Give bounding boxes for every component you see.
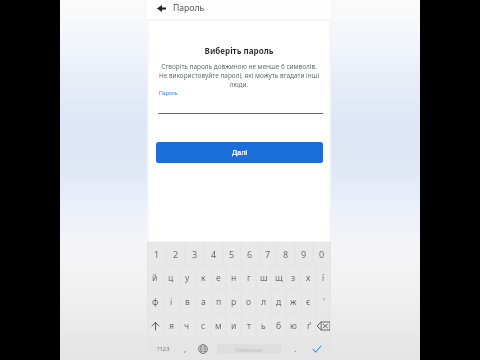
button[interactable]: г xyxy=(242,267,255,289)
staticText: . xyxy=(294,343,297,355)
button[interactable]: Done xyxy=(310,338,324,360)
staticText: Виберіть пароль xyxy=(147,45,331,56)
staticText: ю xyxy=(290,320,297,332)
button[interactable]: л xyxy=(257,291,270,313)
staticText: і xyxy=(170,296,173,308)
staticText: м xyxy=(215,320,222,332)
button[interactable]: . xyxy=(288,338,302,360)
staticText: 3 xyxy=(192,248,198,260)
button[interactable]: с xyxy=(196,315,210,337)
staticText: и xyxy=(231,320,237,332)
button[interactable]: ?123 xyxy=(152,338,174,360)
staticText: щ xyxy=(275,272,283,284)
button[interactable]: Backspace xyxy=(317,315,330,337)
staticText: 2 xyxy=(173,248,179,260)
button[interactable]: в xyxy=(180,291,194,313)
button[interactable]: 3 xyxy=(186,243,203,265)
staticText: Створіть пароль довжиною не менше 6 симв… xyxy=(158,62,320,89)
staticText: Далі xyxy=(232,148,248,158)
button[interactable]: п xyxy=(212,291,225,313)
button[interactable]: ч xyxy=(180,315,194,337)
button[interactable]: х xyxy=(302,267,315,289)
staticText: з xyxy=(291,272,296,284)
button[interactable]: 8 xyxy=(278,243,294,265)
button[interactable]: ї xyxy=(317,267,330,289)
button[interactable]: і xyxy=(164,291,178,313)
button[interactable]: 6 xyxy=(242,243,258,265)
staticText: є xyxy=(306,296,311,308)
button[interactable]: я xyxy=(164,315,178,337)
staticText: ' xyxy=(323,296,325,308)
staticText: 0 xyxy=(319,248,325,260)
button[interactable]: ж xyxy=(287,291,300,313)
staticText: ї xyxy=(322,272,325,284)
staticText: д xyxy=(276,296,282,308)
staticText: н xyxy=(231,272,237,284)
button[interactable]: Shift xyxy=(148,315,162,337)
button[interactable]: м xyxy=(212,315,225,337)
button[interactable]: б xyxy=(272,315,285,337)
staticText: х xyxy=(306,272,311,284)
button[interactable]: 7 xyxy=(260,243,276,265)
button[interactable]: 1 xyxy=(148,243,165,265)
staticText: л xyxy=(261,296,267,308)
button[interactable]: 9 xyxy=(296,243,312,265)
staticText: Пароль xyxy=(173,2,205,14)
staticText: в xyxy=(185,296,190,308)
button[interactable]: 5 xyxy=(224,243,240,265)
staticText: 4 xyxy=(211,248,217,260)
staticText: а xyxy=(201,296,206,308)
button[interactable]: р xyxy=(227,291,240,313)
button[interactable]: ґ xyxy=(302,315,315,337)
button[interactable]: Українська xyxy=(217,344,281,354)
button[interactable]: 4 xyxy=(205,243,222,265)
staticText: с xyxy=(201,320,206,332)
staticText: ж xyxy=(290,296,297,308)
staticText: 6 xyxy=(247,248,253,260)
button[interactable]: ф xyxy=(148,291,162,313)
button[interactable]: й xyxy=(148,267,162,289)
button[interactable]: , xyxy=(178,338,192,360)
button[interactable]: н xyxy=(227,267,240,289)
button[interactable]: е xyxy=(212,267,225,289)
button[interactable]: и xyxy=(227,315,240,337)
button[interactable]: Back xyxy=(153,0,170,18)
button[interactable]: д xyxy=(272,291,285,313)
button[interactable]: ' xyxy=(317,291,330,313)
button[interactable]: є xyxy=(302,291,315,313)
button[interactable]: Change language xyxy=(196,338,210,360)
staticText: я xyxy=(169,320,174,332)
staticText: 1 xyxy=(154,248,160,260)
staticText: г xyxy=(247,272,251,284)
button[interactable]: 0 xyxy=(314,243,330,265)
staticText: е xyxy=(216,272,221,284)
staticText: 9 xyxy=(301,248,307,260)
staticText: т xyxy=(247,320,251,332)
button[interactable]: Далі xyxy=(156,142,323,163)
button[interactable]: ю xyxy=(287,315,300,337)
staticText: п xyxy=(216,296,222,308)
button[interactable]: т xyxy=(242,315,255,337)
button[interactable]: а xyxy=(196,291,210,313)
button[interactable]: щ xyxy=(272,267,285,289)
staticText: ш xyxy=(260,272,268,284)
staticText: к xyxy=(201,272,206,284)
button[interactable]: о xyxy=(242,291,255,313)
staticText: ?123 xyxy=(157,345,170,353)
button[interactable]: ц xyxy=(164,267,178,289)
button[interactable]: 2 xyxy=(167,243,184,265)
button[interactable]: з xyxy=(287,267,300,289)
button[interactable]: ь xyxy=(257,315,270,337)
staticText: й xyxy=(152,272,158,284)
staticText: Українська xyxy=(235,346,263,353)
staticText: ґ xyxy=(307,320,311,332)
button[interactable]: к xyxy=(196,267,210,289)
staticText: Пароль xyxy=(159,89,178,96)
staticText: ь xyxy=(261,320,266,332)
staticText: 5 xyxy=(229,248,235,260)
staticText: 8 xyxy=(283,248,289,260)
button[interactable]: ш xyxy=(257,267,270,289)
staticText: ф xyxy=(152,296,159,308)
staticText: о xyxy=(246,296,252,308)
button[interactable]: у xyxy=(180,267,194,289)
